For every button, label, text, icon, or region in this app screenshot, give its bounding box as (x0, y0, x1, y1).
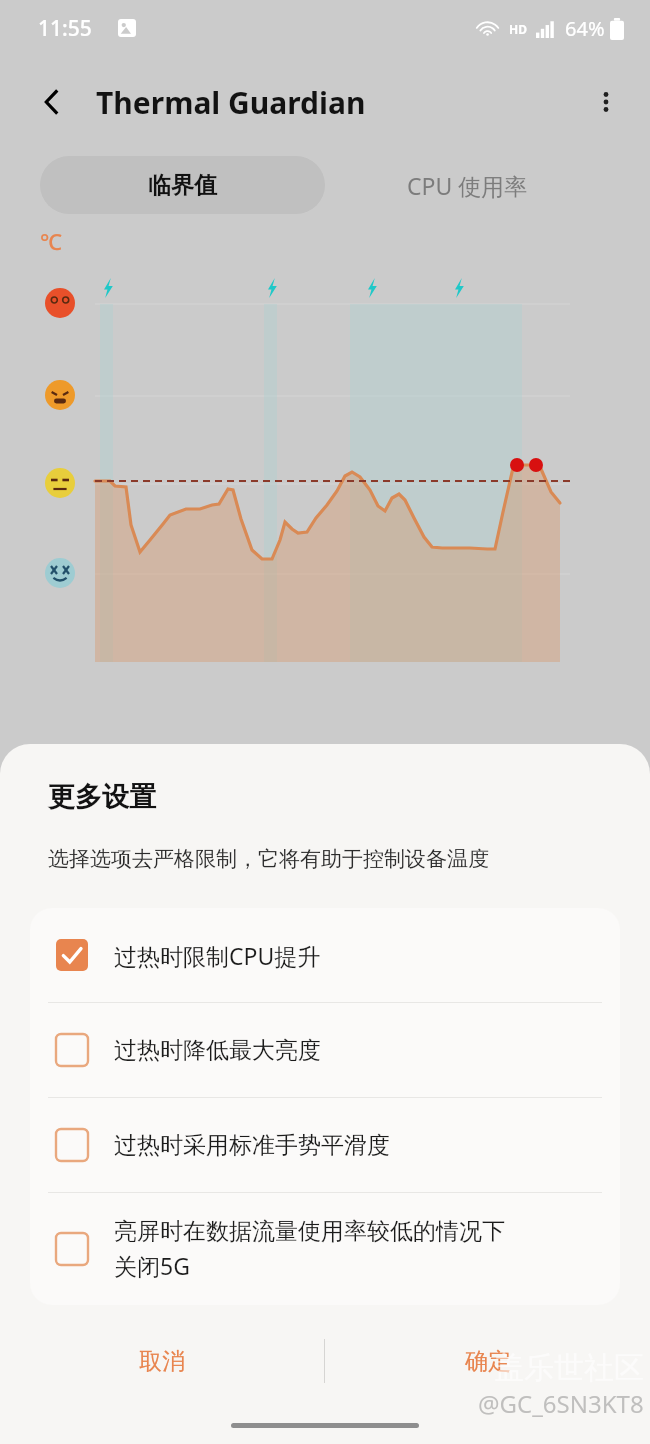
button[interactable]: 临界值 (40, 156, 325, 214)
button[interactable]: Back (26, 76, 78, 128)
staticText: 确定 (465, 1347, 511, 1376)
button[interactable]: 取消 (0, 1315, 324, 1407)
staticText: 11:55 (38, 14, 92, 43)
staticText: 选择选项去严格限制，它将有助于控制设备温度 (48, 846, 489, 872)
staticText: 过热时采用标准手势平滑度 (114, 1131, 390, 1160)
staticText: @GC_6SN3KT8 (478, 1387, 644, 1420)
staticText: 64% (565, 15, 605, 42)
staticText: 取消 (139, 1347, 185, 1376)
button[interactable]: 过热时采用标准手势平滑度 (30, 1098, 620, 1192)
button[interactable]: 确定 (325, 1315, 650, 1407)
staticText: 临界值 (148, 171, 217, 200)
staticText: 更多设置 (48, 780, 156, 814)
staticText: ℃ (40, 226, 62, 256)
button[interactable]: 过热时降低最大亮度 (30, 1003, 620, 1097)
staticText: HD (509, 21, 527, 37)
staticText: CPU 使用率 (407, 170, 528, 201)
button[interactable]: CPU 使用率 (325, 156, 610, 214)
button[interactable]: More options (580, 76, 632, 128)
button[interactable]: 过热时限制CPU提升 (30, 908, 620, 1002)
staticText: Thermal Guardian (96, 82, 366, 123)
button[interactable]: 亮屏时在数据流量使用率较低的情况下 关闭5G (30, 1193, 620, 1305)
staticText: 亮屏时在数据流量使用率较低的情况下 关闭5G (114, 1217, 505, 1282)
staticText: 过热时限制CPU提升 (114, 940, 321, 971)
staticText: 盖乐世社区 (494, 1349, 644, 1387)
staticText: 过热时降低最大亮度 (114, 1036, 321, 1065)
